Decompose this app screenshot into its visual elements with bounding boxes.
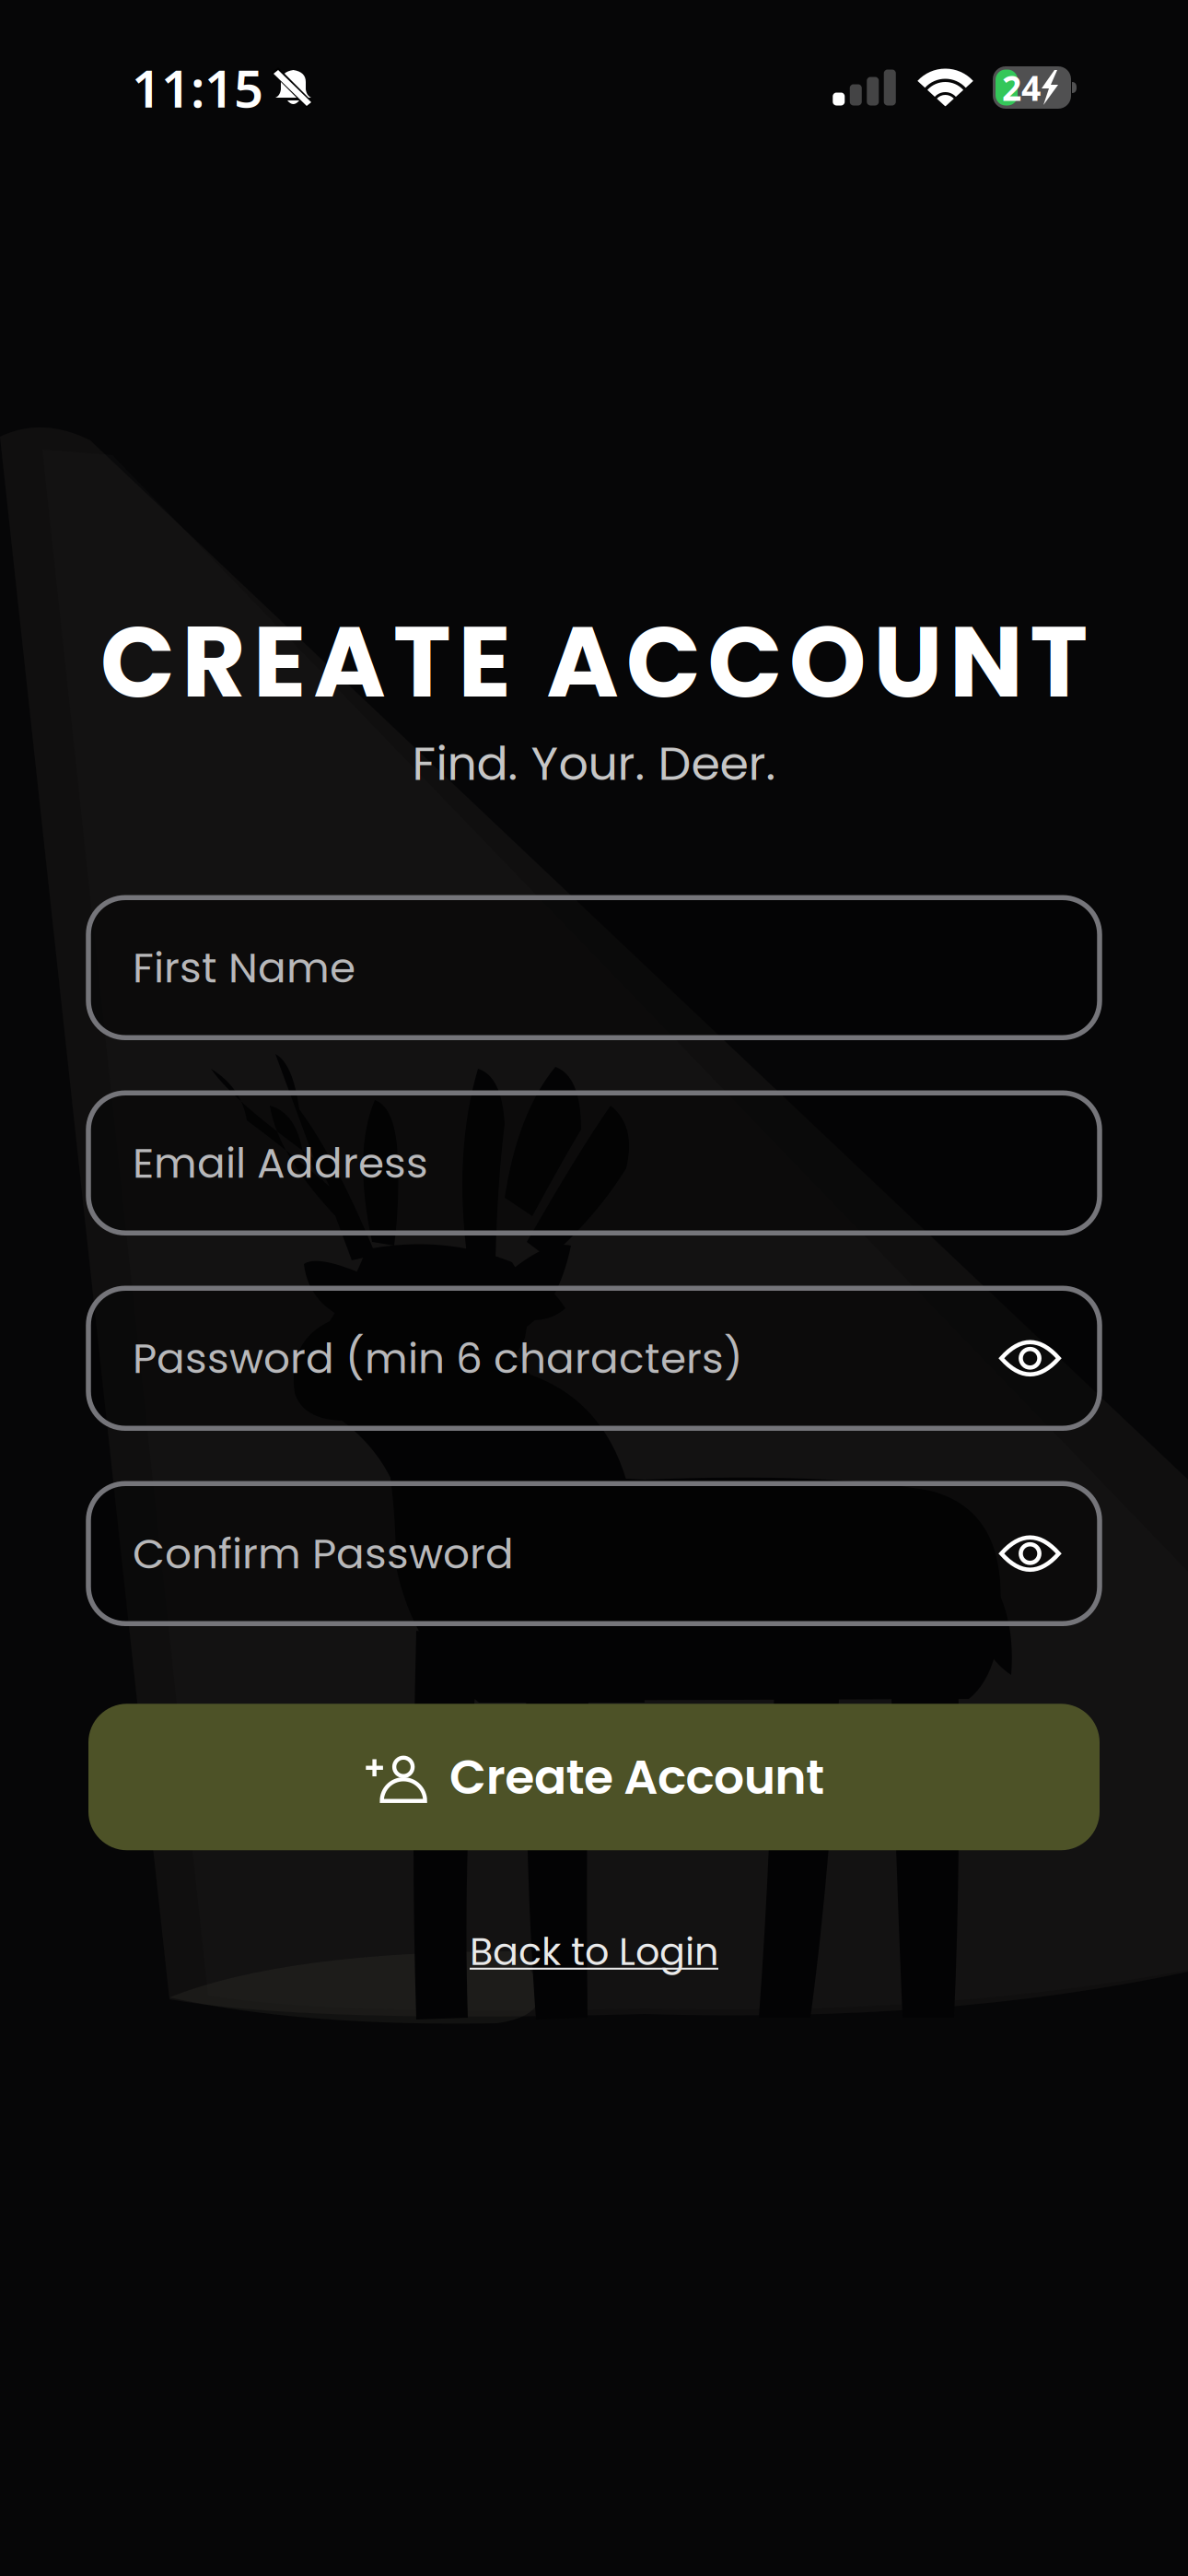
staticText: Find. Your. Deer. xyxy=(412,731,776,796)
button[interactable]: Confirm Password xyxy=(88,1484,1100,1624)
button[interactable]: Show password xyxy=(999,1533,1061,1574)
staticText: Create Account xyxy=(450,1743,824,1811)
staticText: 11:15 xyxy=(132,53,263,122)
button[interactable]: Create Account xyxy=(88,1704,1100,1850)
staticText: Password (min 6 characters) xyxy=(133,1329,743,1388)
button[interactable]: Password (min 6 characters) xyxy=(88,1288,1100,1428)
staticText: 24 xyxy=(1002,65,1041,110)
button[interactable]: Show password xyxy=(999,1338,1061,1379)
staticText: Back to Login xyxy=(470,1925,718,1978)
staticText: First Name xyxy=(133,938,355,997)
staticText: Email Address xyxy=(133,1134,428,1192)
staticText: CREATE ACCOUNT xyxy=(100,593,1088,731)
button[interactable]: Back to Login xyxy=(470,1925,718,1978)
staticText: Confirm Password xyxy=(133,1524,514,1583)
button[interactable]: Email Address xyxy=(88,1093,1100,1233)
button[interactable]: First Name xyxy=(88,898,1100,1038)
